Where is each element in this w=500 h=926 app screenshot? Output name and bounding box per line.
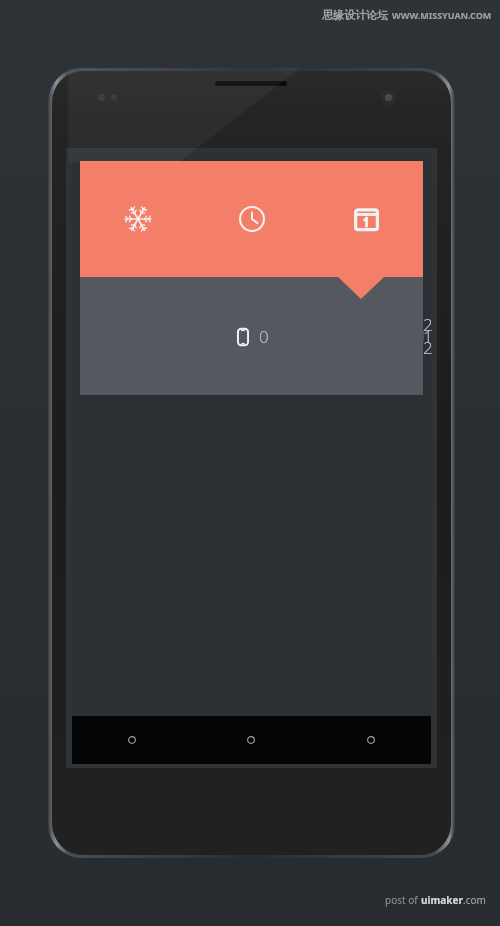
button[interactable]: Clock bbox=[195, 161, 309, 277]
staticText: 0 bbox=[259, 325, 269, 348]
staticText: WWW.MISSYUAN.COM bbox=[392, 9, 492, 21]
button[interactable]: Back bbox=[72, 716, 191, 764]
staticText: 思缘设计论坛 bbox=[322, 8, 388, 22]
button[interactable]: Calendar bbox=[309, 161, 423, 277]
button[interactable]: Snowflake bbox=[80, 161, 195, 277]
staticText: uimaker bbox=[421, 893, 463, 907]
staticText: post of bbox=[385, 893, 421, 907]
button[interactable]: 0 bbox=[80, 277, 423, 395]
staticText: .com bbox=[463, 893, 486, 907]
button[interactable]: Recents bbox=[311, 716, 431, 764]
button[interactable]: Home bbox=[191, 716, 311, 764]
